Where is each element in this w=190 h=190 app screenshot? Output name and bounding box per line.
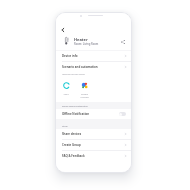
staticText: Supported Third-party services [62, 73, 86, 75]
button[interactable]: FAQ & Feedback [56, 151, 131, 161]
staticText: Device Offline Notification [62, 105, 88, 108]
staticText: FAQ & Feedback [62, 154, 85, 158]
button[interactable]: Device info [56, 51, 131, 61]
staticText: Device info [62, 54, 78, 58]
staticText: Room: Living Room [74, 42, 99, 46]
button[interactable]: Share devices [56, 129, 131, 139]
staticText: Share devices [62, 132, 82, 136]
button[interactable]: Google Assistant [75, 82, 93, 99]
button[interactable]: Share [119, 38, 126, 45]
staticText: Heater [74, 37, 88, 42]
staticText: Google Assistant [80, 93, 89, 99]
staticText: Create Group [62, 143, 81, 147]
staticText: Offline Notification [62, 112, 90, 116]
staticText: Scenario and automation [62, 65, 98, 69]
button[interactable]: Offline Notification [56, 109, 131, 119]
button[interactable]: Alexa [57, 82, 75, 96]
staticText: Other [62, 125, 68, 128]
staticText: Alexa [63, 93, 69, 96]
button[interactable]: Back [58, 25, 67, 34]
button[interactable]: Create Group [56, 140, 131, 150]
button[interactable]: Scenario and automation [56, 62, 131, 72]
